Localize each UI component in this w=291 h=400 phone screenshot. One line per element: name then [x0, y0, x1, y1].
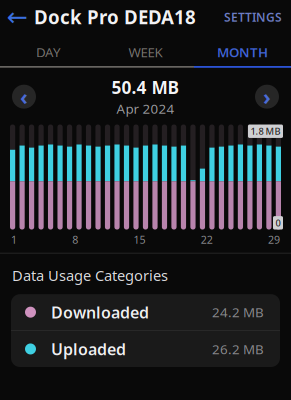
button[interactable]: Downloaded — [11, 294, 280, 330]
staticText: ‹ — [20, 82, 28, 111]
staticText: 22 — [201, 232, 213, 247]
staticText: Downloaded — [51, 301, 149, 323]
button[interactable]: Uploaded — [11, 331, 280, 367]
staticText: 26.2 MB — [212, 340, 264, 358]
staticText: 8 — [72, 232, 78, 247]
staticText: Dock Pro DEDA18 — [34, 5, 196, 29]
button[interactable]: Previous month — [12, 85, 36, 109]
staticText: 24.2 MB — [212, 303, 264, 321]
staticText: › — [263, 82, 271, 111]
staticText: 29 — [268, 232, 280, 247]
staticText: DAY — [36, 43, 61, 61]
staticText: 1.8 MB — [250, 125, 280, 137]
button[interactable]: MONTH — [194, 39, 291, 65]
staticText: Uploaded — [51, 338, 126, 359]
staticText: ← — [6, 3, 27, 31]
button[interactable]: Back — [0, 3, 34, 31]
staticText: WEEK — [128, 43, 162, 61]
staticText: SETTINGS — [224, 9, 282, 25]
staticText: Data Usage Categories — [12, 266, 168, 285]
staticText: 1 — [11, 232, 17, 247]
button[interactable]: WEEK — [97, 39, 194, 65]
staticText: MONTH — [217, 43, 268, 61]
staticText: 15 — [133, 232, 145, 247]
staticText: Apr 2024 — [116, 100, 174, 117]
staticText: 50.4 MB — [111, 76, 179, 99]
button[interactable]: Next month — [255, 85, 279, 109]
staticText: 0 — [275, 217, 280, 229]
button[interactable]: DAY — [0, 39, 97, 65]
button[interactable]: SETTINGS — [215, 3, 291, 31]
